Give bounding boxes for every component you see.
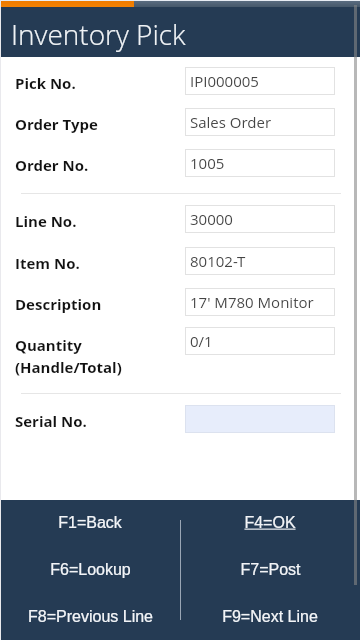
staticText: F1=Back: [58, 514, 122, 532]
button[interactable]: F6=Lookup: [0, 546, 180, 593]
staticText: Pick No.: [15, 73, 76, 93]
button[interactable]: 0/1: [185, 327, 335, 355]
button[interactable]: 30000: [185, 205, 335, 233]
staticText: Sales Order: [190, 112, 272, 132]
staticText: F8=Previous Line: [28, 608, 153, 626]
staticText: F4=OK: [244, 514, 296, 532]
other: Scroll: [354, 5, 357, 585]
button[interactable]: [185, 405, 335, 433]
staticText: Line No.: [15, 211, 77, 231]
staticText: Order Type: [15, 114, 98, 134]
staticText: F9=Next Line: [222, 608, 318, 626]
button[interactable]: F4=OK: [180, 500, 360, 546]
staticText: Inventory Pick: [11, 15, 186, 53]
staticText: 1005: [190, 153, 225, 173]
staticText: Quantity (Handle/Total): [15, 335, 122, 377]
button[interactable]: 17' M780 Monitor: [185, 288, 335, 316]
button[interactable]: 80102-T: [185, 247, 335, 275]
button[interactable]: Sales Order: [185, 108, 335, 136]
staticText: Order No.: [15, 155, 89, 175]
staticText: 30000: [190, 209, 233, 229]
staticText: Serial No.: [15, 411, 87, 431]
staticText: Item No.: [15, 253, 80, 273]
button[interactable]: F9=Next Line: [180, 593, 360, 640]
button[interactable]: 1005: [185, 149, 335, 177]
button[interactable]: F1=Back: [0, 500, 180, 546]
staticText: Description: [15, 294, 102, 314]
staticText: F7=Post: [240, 561, 301, 579]
staticText: F6=Lookup: [50, 561, 131, 579]
staticText: 80102-T: [190, 251, 246, 271]
staticText: 0/1: [190, 331, 213, 351]
staticText: 17' M780 Monitor: [190, 292, 314, 312]
button[interactable]: F8=Previous Line: [0, 593, 180, 640]
button[interactable]: F7=Post: [180, 546, 360, 593]
staticText: IPI000005: [190, 71, 259, 91]
button[interactable]: IPI000005: [185, 67, 335, 95]
